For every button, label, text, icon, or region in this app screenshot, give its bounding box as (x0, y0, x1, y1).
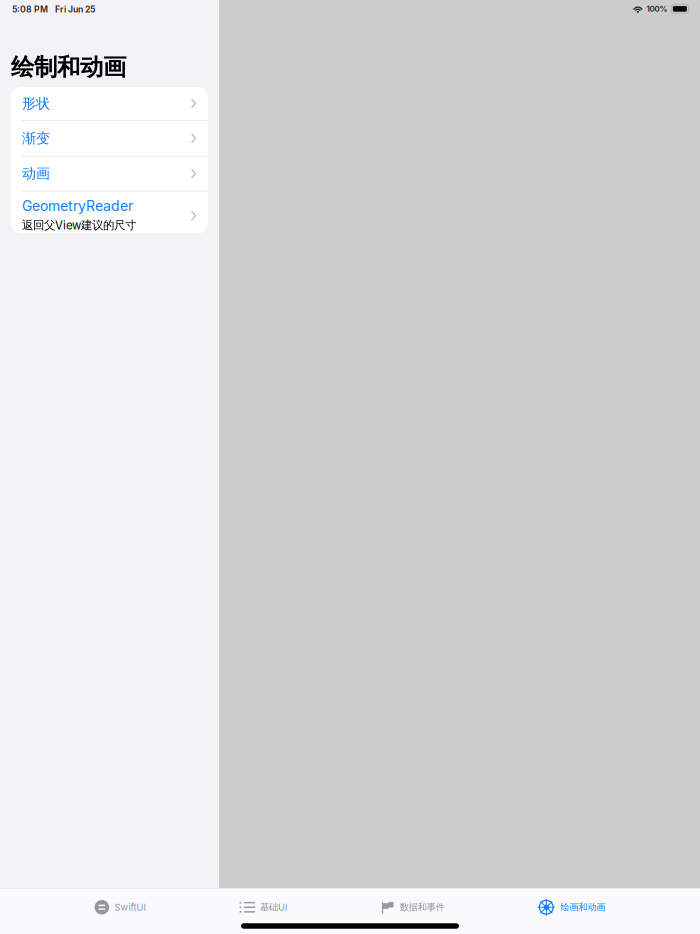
staticText: 数据和事件 (400, 901, 445, 913)
staticText: 形状 (22, 95, 50, 112)
staticText: 返回父View建议的尺寸 (22, 218, 136, 232)
button[interactable]: 基础UI (237, 894, 291, 920)
staticText: 绘画和动画 (560, 901, 605, 913)
button[interactable]: SwiftUI (92, 894, 150, 920)
staticText: GeometryReader (22, 197, 133, 214)
staticText: 绘制和动画 (11, 53, 126, 82)
staticText: 动画 (22, 165, 50, 182)
staticText: 5:08 PM (12, 4, 48, 14)
staticText: SwiftUI (115, 902, 147, 913)
button[interactable]: 动画 (11, 157, 208, 191)
button[interactable]: GeometryReader (11, 191, 208, 233)
button[interactable]: 渐变 (11, 121, 208, 156)
staticText: 100% (647, 4, 668, 14)
button[interactable]: 形状 (11, 87, 208, 120)
staticText: 基础UI (260, 901, 288, 913)
staticText: Fri Jun 25 (55, 4, 95, 14)
button[interactable]: 绘画和动画 (535, 894, 608, 920)
button[interactable]: 数据和事件 (378, 894, 448, 920)
staticText: 渐变 (22, 129, 50, 147)
